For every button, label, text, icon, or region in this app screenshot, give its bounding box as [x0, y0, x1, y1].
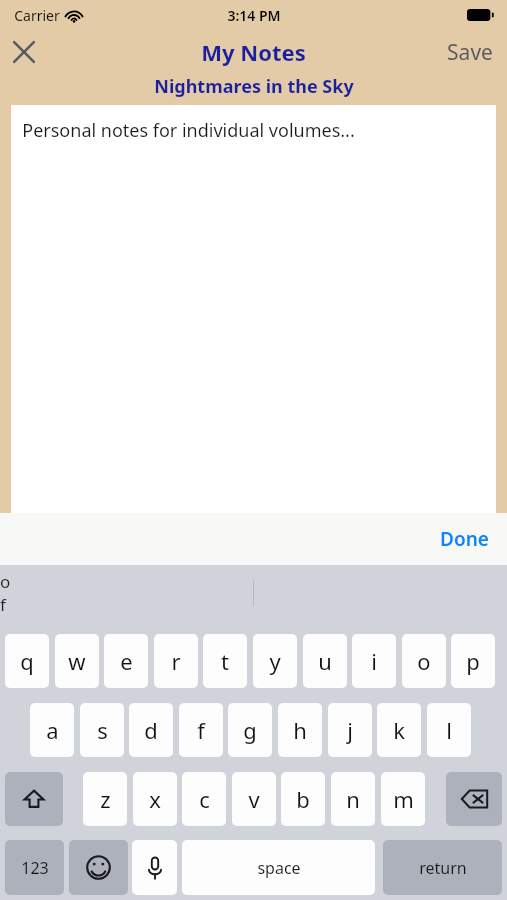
staticText: h [293, 715, 307, 745]
staticText: d [144, 715, 158, 745]
button[interactable]: s [80, 703, 124, 757]
staticText: q [20, 646, 34, 676]
other: Backspace [461, 789, 488, 809]
staticText: w [68, 646, 86, 676]
button[interactable]: b [281, 772, 325, 826]
button[interactable]: i [352, 634, 396, 688]
staticText: return [419, 857, 467, 879]
button[interactable]: Done [422, 516, 507, 562]
staticText: t [221, 646, 229, 676]
button[interactable]: h [278, 703, 322, 757]
staticText: k [393, 715, 405, 745]
staticText: Done [440, 526, 489, 552]
staticText: Carrier [14, 6, 60, 25]
button[interactable]: Emoji [69, 840, 128, 895]
button[interactable]: o [402, 634, 446, 688]
button[interactable]: l [427, 703, 471, 757]
button[interactable]: y [253, 634, 297, 688]
button[interactable]: space [182, 840, 375, 895]
button[interactable]: m [381, 772, 425, 826]
button[interactable]: g [228, 703, 272, 757]
button[interactable]: a [30, 703, 74, 757]
staticText: z [100, 784, 111, 814]
button[interactable]: u [303, 634, 347, 688]
other: Dictate [147, 856, 163, 880]
staticText: e [120, 646, 133, 676]
button[interactable]: t [203, 634, 247, 688]
button[interactable]: x [133, 772, 177, 826]
button[interactable]: j [328, 703, 372, 757]
staticText: l [446, 715, 452, 745]
staticText: m [393, 784, 414, 814]
button[interactable]: 123 [5, 840, 64, 895]
button[interactable]: Backspace [446, 772, 502, 826]
staticText: v [248, 784, 260, 814]
button[interactable]: k [377, 703, 421, 757]
staticText: j [347, 715, 353, 745]
button[interactable]: return [383, 840, 502, 895]
button[interactable]: z [83, 772, 127, 826]
staticText: g [243, 715, 257, 745]
staticText: s [97, 715, 108, 745]
button[interactable]: Save [433, 30, 507, 74]
other: Emoji [86, 855, 111, 880]
staticText: Save [447, 38, 493, 66]
button[interactable]: e [104, 634, 148, 688]
button[interactable]: q [5, 634, 49, 688]
button[interactable]: Personal notes for individual volumes... [11, 105, 496, 513]
staticText: b [296, 784, 310, 814]
button[interactable]: c [182, 772, 226, 826]
staticText: i [371, 646, 377, 676]
button[interactable]: My Notes [201, 37, 306, 67]
staticText: u [318, 646, 332, 676]
staticText: n [346, 784, 360, 814]
button[interactable]: Shift [5, 772, 63, 826]
staticText: x [149, 784, 161, 814]
staticText: c [199, 784, 210, 814]
button[interactable]: Close [0, 30, 48, 74]
button[interactable]: w [55, 634, 99, 688]
button[interactable]: Dictate [132, 840, 177, 895]
staticText: 3:14 PM [227, 6, 281, 25]
button[interactable]: f [179, 703, 223, 757]
staticText: My Notes [201, 37, 306, 67]
other: Shift [23, 788, 45, 810]
staticText: r [171, 646, 181, 676]
staticText: a [46, 715, 59, 745]
staticText: Personal notes for individual volumes... [22, 118, 355, 143]
staticText: space [257, 857, 301, 879]
button[interactable]: v [232, 772, 276, 826]
button[interactable]: n [331, 772, 375, 826]
staticText: f [197, 715, 205, 745]
staticText: 123 [21, 857, 49, 879]
button[interactable]: r [154, 634, 198, 688]
staticText: o [417, 646, 431, 676]
button[interactable]: p [451, 634, 495, 688]
staticText: p [466, 646, 480, 676]
staticText: y [269, 646, 281, 676]
staticText: Nightmares in the Sky [154, 74, 354, 99]
button[interactable]: d [129, 703, 173, 757]
